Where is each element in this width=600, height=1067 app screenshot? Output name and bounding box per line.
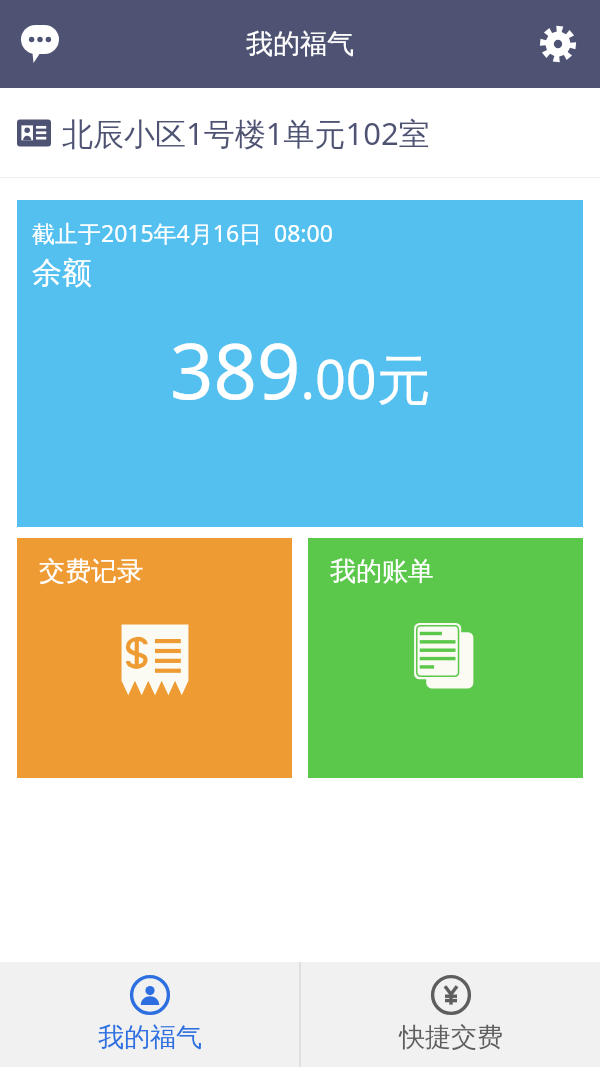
staticText: 交费记录 [39, 555, 143, 588]
button[interactable]: Settings [526, 12, 590, 76]
staticText: 余额 [32, 254, 92, 292]
staticText: 截止于2015年4月16日 08:00 [32, 217, 333, 248]
staticText: 北辰小区1号楼1单元102室 [62, 112, 430, 154]
staticText: 我的福气 [246, 27, 354, 61]
button[interactable]: Messages [8, 12, 72, 76]
button[interactable]: 北辰小区1号楼1单元102室 [0, 88, 600, 177]
button[interactable]: 截止于2015年4月16日 08:00 [17, 200, 583, 527]
staticText: 389.00元 [170, 318, 431, 422]
button[interactable]: 我的福气 [0, 962, 299, 1067]
button[interactable]: 我的账单 [308, 538, 583, 778]
button[interactable]: 快捷交费 [301, 962, 600, 1067]
staticText: 我的账单 [330, 555, 434, 588]
staticText: 我的福气 [98, 1021, 202, 1054]
staticText: 快捷交费 [399, 1021, 503, 1054]
button[interactable]: 交费记录 [17, 538, 292, 778]
